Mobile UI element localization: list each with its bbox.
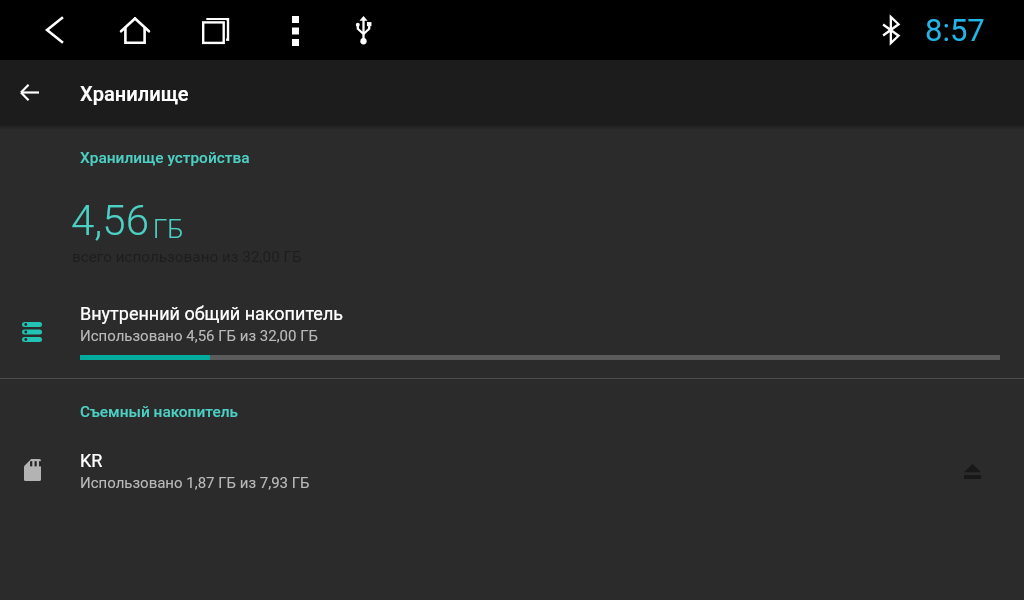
staticText: 8:57 [925, 12, 985, 48]
staticText: Хранилище устройства [80, 149, 250, 167]
staticText: Хранилище [80, 82, 189, 105]
button[interactable]: Recent apps [187, 6, 243, 56]
staticText: ГБ [153, 214, 184, 244]
button[interactable]: Bluetooth [871, 16, 911, 44]
staticText: KR [80, 450, 103, 471]
staticText: Использовано 4,56 ГБ из 32,00 ГБ [80, 327, 318, 345]
button[interactable]: Back [27, 5, 83, 55]
staticText: Внутренний общий накопитель [80, 303, 344, 324]
button[interactable]: Home [107, 6, 163, 56]
button[interactable]: Navigate up [9, 76, 49, 108]
button[interactable]: KR [0, 440, 1024, 498]
button[interactable]: Eject [952, 451, 992, 491]
staticText: 4,56 [71, 196, 149, 245]
staticText: Съемный накопитель [80, 403, 239, 421]
staticText: Использовано 1,87 ГБ из 7,93 ГБ [80, 474, 310, 492]
button[interactable]: Внутренний общий накопитель [0, 294, 1024, 352]
button[interactable]: More options [268, 6, 324, 56]
staticText: всего использовано из 32,00 ГБ [72, 248, 302, 266]
button[interactable]: USB [336, 6, 392, 56]
